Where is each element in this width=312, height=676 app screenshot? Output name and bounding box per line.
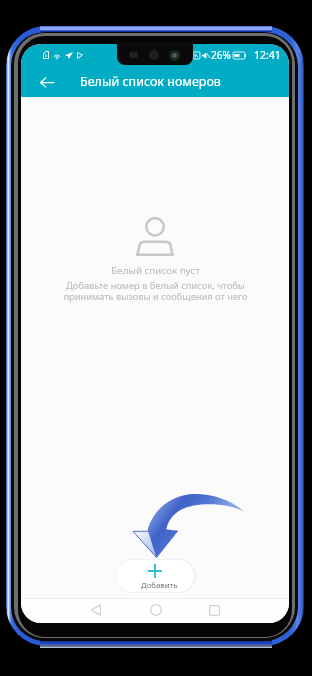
staticText: Белый список пуст: [111, 264, 200, 277]
staticText: Добавить: [141, 580, 178, 591]
staticText: Добавьте номер в белый список, чтобы при…: [63, 279, 248, 303]
staticText: 12:41: [254, 48, 281, 62]
button[interactable]: Home: [146, 600, 166, 620]
button[interactable]: Recent apps: [204, 600, 224, 620]
button[interactable]: Back: [36, 71, 58, 93]
staticText: 26%: [211, 48, 231, 62]
button[interactable]: Добавить: [116, 560, 194, 592]
staticText: Белый список номеров: [80, 73, 221, 90]
button[interactable]: Back: [85, 600, 105, 620]
